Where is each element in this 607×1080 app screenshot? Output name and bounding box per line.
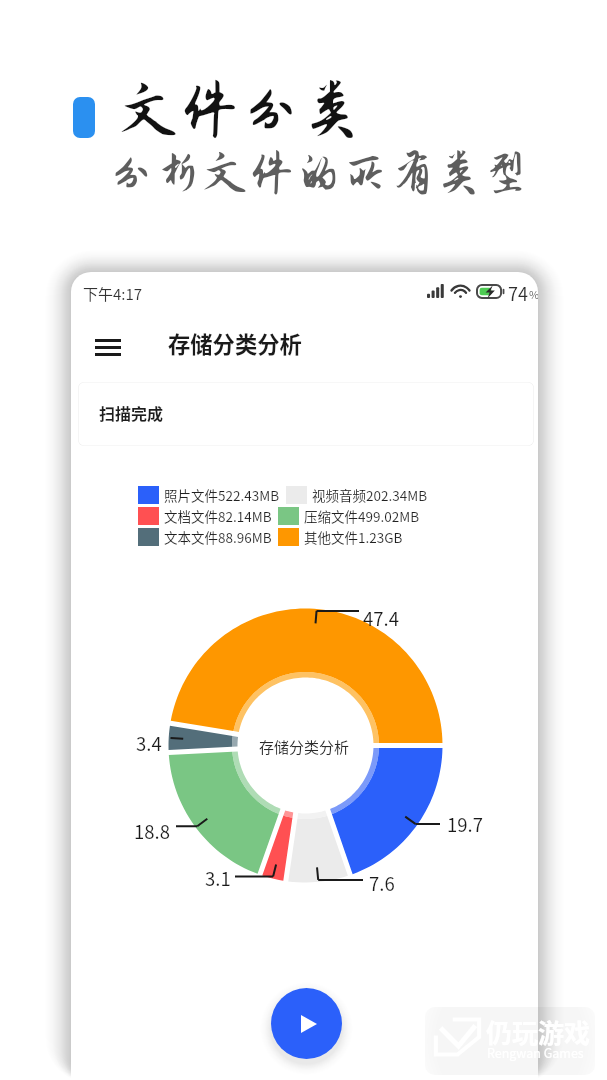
- staticText: 扫描完成: [99, 401, 164, 424]
- staticText: Rengwan Games: [487, 1043, 584, 1061]
- staticText: 74: [508, 280, 528, 306]
- staticText: 19.7: [447, 811, 483, 838]
- staticText: %: [529, 286, 538, 302]
- button[interactable]: Start scan: [271, 988, 342, 1059]
- button[interactable]: 其他文件1.23GB: [278, 527, 403, 547]
- button[interactable]: 压缩文件499.02MB: [278, 506, 420, 526]
- staticText: 照片文件522.43MB: [164, 485, 280, 505]
- button[interactable]: 扫描完成: [78, 382, 534, 446]
- button[interactable]: 视频音频202.34MB: [286, 485, 428, 505]
- staticText: 3.4: [136, 730, 162, 757]
- staticText: 压缩文件499.02MB: [304, 506, 420, 526]
- button[interactable]: 文本文件88.96MB: [138, 527, 272, 547]
- button[interactable]: Menu: [86, 325, 130, 369]
- staticText: 分析文件的所有类型: [108, 147, 530, 199]
- staticText: 下午4:17: [83, 283, 143, 305]
- staticText: 其他文件1.23GB: [304, 527, 403, 547]
- staticText: 18.8: [134, 818, 170, 845]
- button[interactable]: 照片文件522.43MB: [138, 485, 280, 505]
- button[interactable]: 文档文件82.14MB: [138, 506, 272, 526]
- staticText: 47.4: [363, 605, 399, 632]
- staticText: 文档文件82.14MB: [164, 506, 272, 526]
- staticText: 7.6: [369, 870, 395, 897]
- staticText: 3.1: [205, 865, 231, 892]
- staticText: 存储分类分析: [168, 327, 302, 359]
- staticText: 存储分类分析: [259, 736, 350, 758]
- staticText: 仍玩游戏: [486, 1013, 591, 1051]
- staticText: 视频音频202.34MB: [312, 485, 428, 505]
- staticText: 文本文件88.96MB: [164, 527, 272, 547]
- staticText: 文件分类: [118, 76, 363, 144]
